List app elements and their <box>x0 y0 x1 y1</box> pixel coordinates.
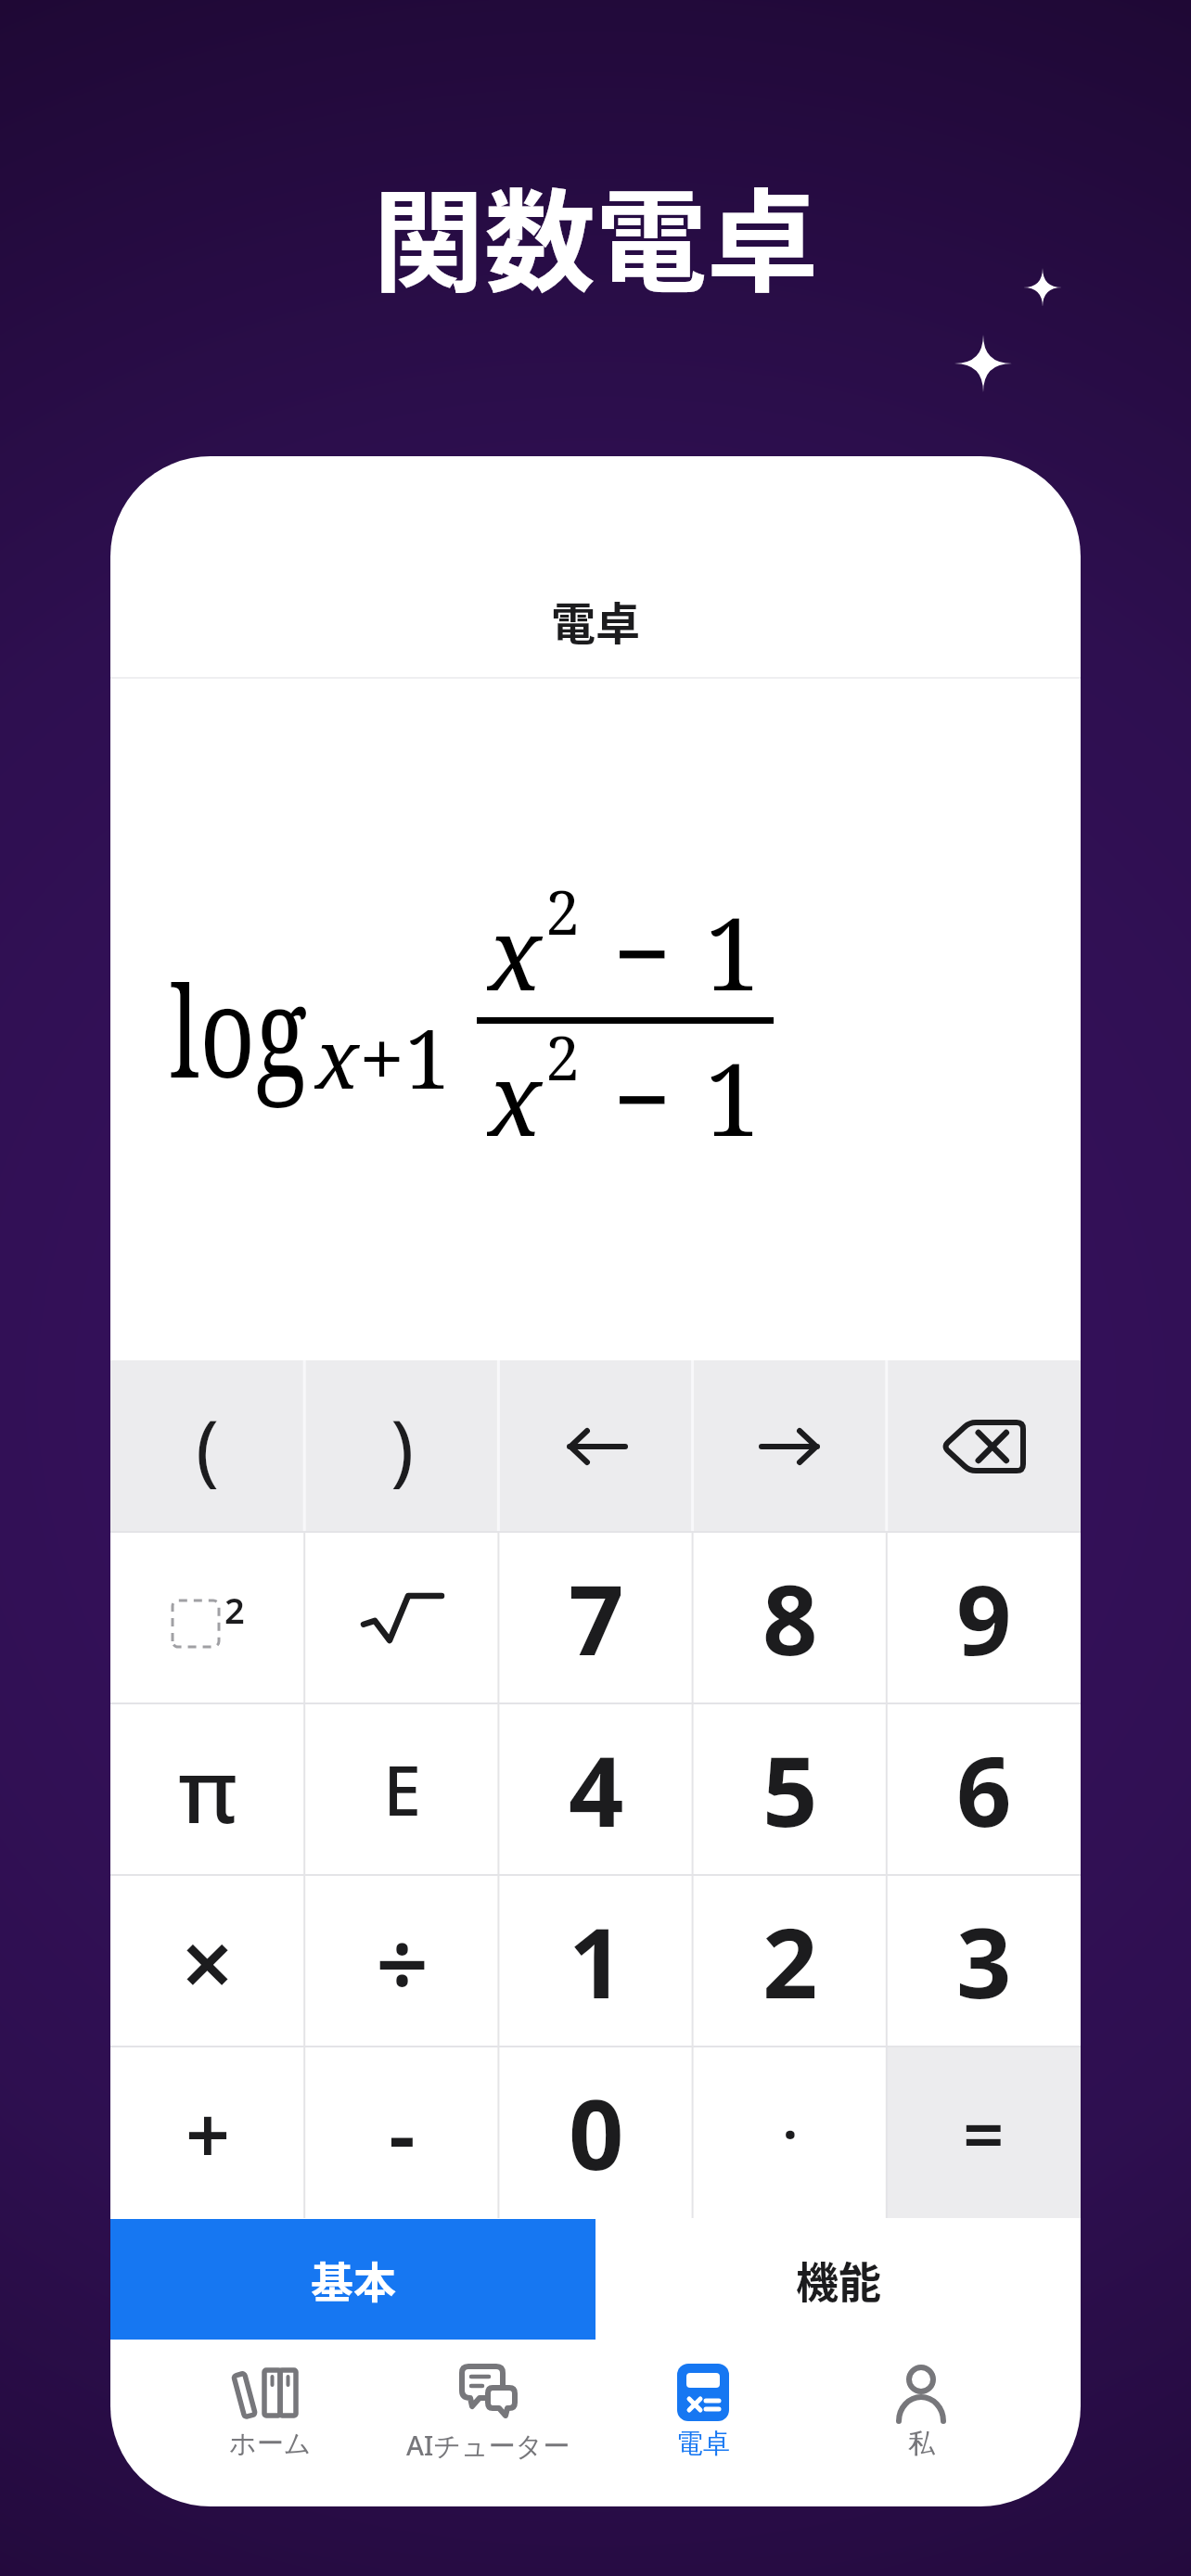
staticText: ÷ <box>376 1898 429 2024</box>
staticText: 2 <box>224 1586 245 1634</box>
staticText: × <box>181 1898 235 2024</box>
button[interactable]: - <box>305 2047 499 2218</box>
staticText: E <box>383 1742 422 1836</box>
button[interactable]: 2 <box>693 1875 887 2047</box>
button[interactable]: 電卓 <box>606 2340 800 2506</box>
staticText: 私 <box>908 2427 935 2461</box>
button[interactable]: 4 <box>499 1703 693 1875</box>
button[interactable]: ( <box>110 1360 305 1532</box>
staticText: 基本 <box>311 2249 396 2311</box>
button[interactable]: 機能 <box>595 2219 1081 2340</box>
staticText: 8 <box>762 1552 818 1684</box>
staticText: 1 <box>569 1895 624 2027</box>
staticText: 機能 <box>796 2249 881 2311</box>
staticText: 2 <box>762 1895 818 2027</box>
staticText: x2 − 1 <box>487 1014 764 1154</box>
staticText: 9 <box>956 1552 1012 1684</box>
button[interactable]: 9 <box>887 1532 1081 1703</box>
staticText: x2 − 1 <box>487 869 764 1008</box>
button[interactable]: π <box>110 1703 305 1875</box>
button[interactable]: 6 <box>887 1703 1081 1875</box>
button[interactable]: · <box>693 2047 887 2218</box>
staticText: 関数電卓 <box>373 154 818 302</box>
button[interactable] <box>499 1360 693 1532</box>
staticText: 電卓 <box>551 588 641 653</box>
button[interactable]: 8 <box>693 1532 887 1703</box>
staticText: 3 <box>956 1895 1012 2027</box>
staticText: 0 <box>569 2067 624 2199</box>
button[interactable]: 2 <box>110 1532 305 1703</box>
staticText: = <box>963 2084 1005 2182</box>
button[interactable]: AIチューター <box>391 2340 585 2506</box>
button[interactable]: × <box>110 1875 305 2047</box>
button[interactable]: 5 <box>693 1703 887 1875</box>
staticText: π <box>178 1730 237 1849</box>
button[interactable]: ) <box>305 1360 499 1532</box>
staticText: log <box>170 944 308 1115</box>
staticText: ホーム <box>229 2427 312 2461</box>
button[interactable]: 私 <box>824 2340 1018 2506</box>
staticText: 4 <box>569 1724 624 1855</box>
button[interactable]: = <box>887 2047 1081 2218</box>
button[interactable]: 基本 <box>110 2219 595 2340</box>
staticText: - <box>389 2075 416 2189</box>
button[interactable]: 3 <box>887 1875 1081 2047</box>
staticText: 電卓 <box>676 2427 730 2461</box>
button[interactable]: 1 <box>499 1875 693 2047</box>
button[interactable] <box>305 1532 499 1703</box>
button[interactable]: ÷ <box>305 1875 499 2047</box>
staticText: ( <box>196 1394 220 1499</box>
staticText: AIチューター <box>406 2427 570 2464</box>
staticText: + <box>186 2080 231 2186</box>
staticText: 5 <box>762 1724 818 1855</box>
staticText: · <box>783 2098 798 2168</box>
staticText: 7 <box>569 1552 624 1684</box>
button[interactable]: E <box>305 1703 499 1875</box>
button[interactable]: + <box>110 2047 305 2218</box>
staticText: ) <box>391 1394 415 1499</box>
button[interactable] <box>887 1360 1081 1532</box>
button[interactable]: 0 <box>499 2047 693 2218</box>
button[interactable]: 7 <box>499 1532 693 1703</box>
staticText: x+1 <box>314 1001 451 1103</box>
button[interactable] <box>693 1360 887 1532</box>
button[interactable]: ホーム <box>173 2340 367 2506</box>
staticText: 6 <box>956 1724 1012 1855</box>
